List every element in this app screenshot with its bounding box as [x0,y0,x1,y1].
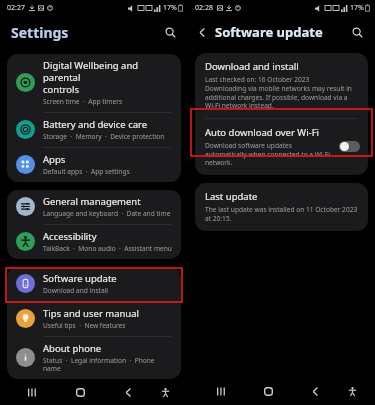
staticText: TalkBack · Mono audio · Assistant menu [43,244,172,253]
staticText: Useful tips · New features [43,321,126,330]
staticText: Settings [11,23,69,42]
button[interactable]: Accessibility [152,379,178,405]
staticText: Apps [43,153,66,166]
staticText: Last checked on: 16 October 2023 [205,75,310,84]
staticText: Download software updates automatically … [205,141,333,167]
button[interactable]: Back [115,379,141,405]
button[interactable]: Search [159,21,181,43]
button[interactable]: Home [67,379,93,405]
button[interactable]: Recents [208,378,234,404]
button[interactable]: Last update [195,183,368,231]
button[interactable]: Home [255,378,281,404]
staticText: Status · Legal information · Phone name [43,356,172,373]
staticText: Software update [215,23,323,41]
staticText: Accessibility [43,230,97,243]
staticText: Software update [43,272,117,285]
staticText: Screen time · App timers [43,97,123,106]
staticText: Default apps · App settings [43,167,130,176]
button[interactable]: Auto download over Wi-Fi [339,141,360,152]
staticText: Tips and user manual [43,307,140,320]
button[interactable]: Search [346,21,368,43]
button[interactable]: Accessibility [339,378,365,404]
staticText: 02:27 [7,3,25,13]
staticText: Auto download over Wi-Fi [205,126,320,139]
button[interactable]: Battery and device care [7,113,181,147]
button[interactable]: Recents [19,379,45,405]
button[interactable]: Back [302,378,328,404]
button[interactable]: Software update [7,267,181,301]
button[interactable]: About phone [7,337,181,379]
staticText: Download and install [43,286,109,295]
staticText: Download and install [205,60,299,73]
button[interactable]: Navigate up [192,22,212,42]
staticText: controls [43,83,80,96]
staticText: Downloading via mobile networks may resu… [205,84,358,110]
staticText: About phone [43,342,102,355]
button[interactable]: Auto download over Wi-Fi [195,119,368,175]
button[interactable]: Tips and user manual [7,302,181,336]
staticText: 17% [163,3,177,13]
staticText: Digital Wellbeing and parental [43,59,172,83]
staticText: Language and keyboard · Date and time [43,209,171,218]
button[interactable]: Download and install [195,53,368,118]
staticText: Last update [205,190,258,203]
staticText: General management [43,195,141,208]
button[interactable]: Apps [7,148,181,182]
staticText: 17% [350,3,364,13]
staticText: 02:28 [195,3,213,13]
staticText: Storage · Memory · Device protection [43,132,165,141]
staticText: The last update was installed on 11 Octo… [205,205,358,223]
staticText: Battery and device care [43,118,148,131]
button[interactable]: General management [7,190,181,224]
button[interactable]: Digital Wellbeing and parental [7,54,181,112]
button[interactable]: Accessibility [7,225,181,259]
